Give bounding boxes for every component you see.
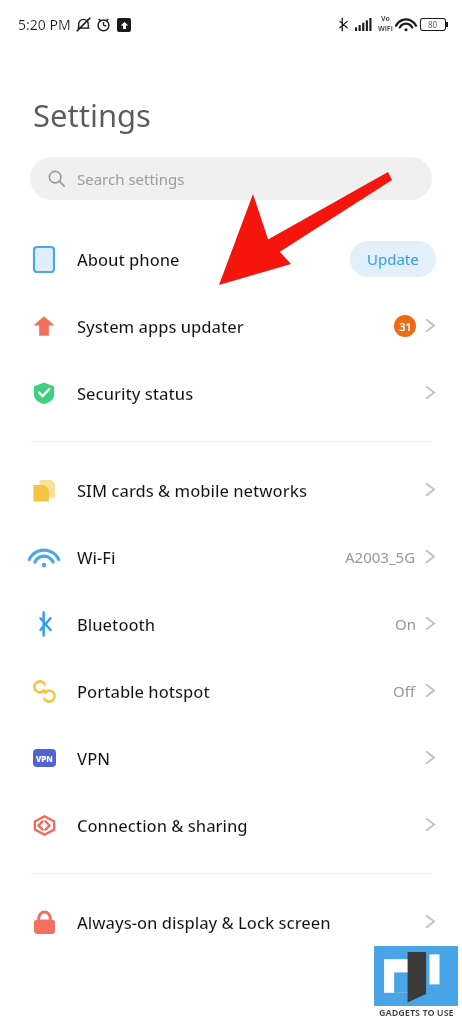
button[interactable]: Wi-Fi bbox=[0, 523, 462, 590]
staticText: Search settings bbox=[77, 169, 185, 189]
staticText: About phone bbox=[77, 248, 350, 270]
staticText: 5:20 PM bbox=[18, 15, 71, 34]
button[interactable]: Connection & sharing bbox=[0, 791, 462, 858]
button[interactable]: Security status bbox=[0, 359, 462, 426]
staticText: A2003_5G bbox=[345, 547, 416, 567]
staticText: Settings bbox=[33, 94, 151, 136]
button[interactable]: About phone bbox=[0, 225, 462, 292]
button[interactable]: Always-on display & Lock screen bbox=[0, 888, 462, 955]
button[interactable]: System apps updater bbox=[0, 292, 462, 359]
button[interactable]: Bluetooth bbox=[0, 590, 462, 657]
staticText: Security status bbox=[77, 382, 425, 404]
staticText: VPN bbox=[77, 747, 425, 769]
staticText: Wi-Fi bbox=[77, 546, 345, 568]
button[interactable]: Search settings bbox=[30, 157, 432, 200]
staticText: SIM cards & mobile networks bbox=[77, 479, 425, 501]
staticText: GADGETS TO USE bbox=[379, 1006, 454, 1018]
staticText: VPN bbox=[36, 753, 53, 764]
staticText: Portable hotspot bbox=[77, 680, 393, 702]
button[interactable]: SIM cards & mobile networks bbox=[0, 456, 462, 523]
staticText: Off bbox=[393, 681, 416, 701]
staticText: 80 bbox=[428, 19, 438, 30]
staticText: 31 bbox=[399, 319, 412, 334]
staticText: System apps updater bbox=[77, 315, 394, 337]
button[interactable]: Update bbox=[350, 241, 436, 277]
staticText: Vo bbox=[381, 14, 390, 24]
staticText: WiFi bbox=[378, 24, 393, 34]
staticText: Always-on display & Lock screen bbox=[77, 911, 425, 933]
button[interactable]: Portable hotspot bbox=[0, 657, 462, 724]
staticText: Connection & sharing bbox=[77, 814, 425, 836]
staticText: On bbox=[395, 614, 416, 634]
staticText: Update bbox=[367, 249, 419, 269]
staticText: Bluetooth bbox=[77, 613, 395, 635]
button[interactable]: VPN bbox=[0, 724, 462, 791]
